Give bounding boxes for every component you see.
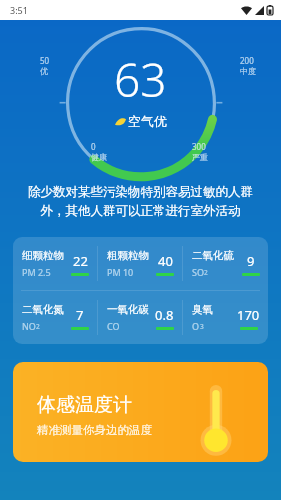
staticText: 3:51 bbox=[10, 4, 28, 16]
other: Thermometer bbox=[202, 385, 230, 453]
staticText: 2 bbox=[204, 268, 208, 277]
staticText: 粗颗粒物 bbox=[107, 249, 149, 262]
staticText: NO bbox=[22, 320, 36, 332]
button[interactable]: 细颗粒物 bbox=[13, 237, 268, 344]
staticText: 除少数对某些污染物特别容易过敏的人群外，其他人群可以正常进行室外活动 bbox=[26, 184, 255, 219]
staticText: 严重 bbox=[192, 152, 208, 162]
staticText: 170 bbox=[237, 306, 260, 324]
staticText: PM 10 bbox=[107, 266, 134, 278]
staticText: 二氧化硫 bbox=[192, 249, 234, 262]
staticText: 一氧化碳 bbox=[107, 303, 149, 316]
staticText: 0 bbox=[91, 141, 96, 152]
staticText: 40 bbox=[158, 252, 173, 270]
staticText: SO bbox=[192, 266, 204, 278]
staticText: 细颗粒物 bbox=[22, 249, 64, 262]
staticText: O bbox=[192, 320, 200, 332]
staticText: 健康 bbox=[91, 152, 107, 162]
staticText: 优 bbox=[40, 66, 48, 76]
staticText: PM 2.5 bbox=[22, 266, 51, 278]
button[interactable]: 体感温度计 bbox=[13, 362, 268, 462]
staticText: 体感温度计 bbox=[37, 393, 132, 417]
staticText: 200 bbox=[240, 55, 254, 66]
staticText: 300 bbox=[192, 141, 206, 152]
staticText: 50 bbox=[40, 55, 50, 66]
staticText: 0.8 bbox=[155, 306, 174, 324]
staticText: 2 bbox=[36, 322, 40, 331]
staticText: 7 bbox=[76, 306, 84, 324]
staticText: 3 bbox=[200, 322, 204, 331]
staticText: 空气优 bbox=[128, 113, 167, 129]
staticText: 63 bbox=[114, 48, 167, 111]
staticText: 中度 bbox=[240, 66, 256, 76]
staticText: CO bbox=[107, 320, 120, 332]
staticText: 9 bbox=[247, 252, 255, 270]
staticText: 22 bbox=[73, 252, 88, 270]
staticText: 二氧化氮 bbox=[22, 303, 64, 316]
staticText: 精准测量你身边的温度 bbox=[37, 423, 152, 437]
staticText: 臭氧 bbox=[192, 303, 213, 316]
